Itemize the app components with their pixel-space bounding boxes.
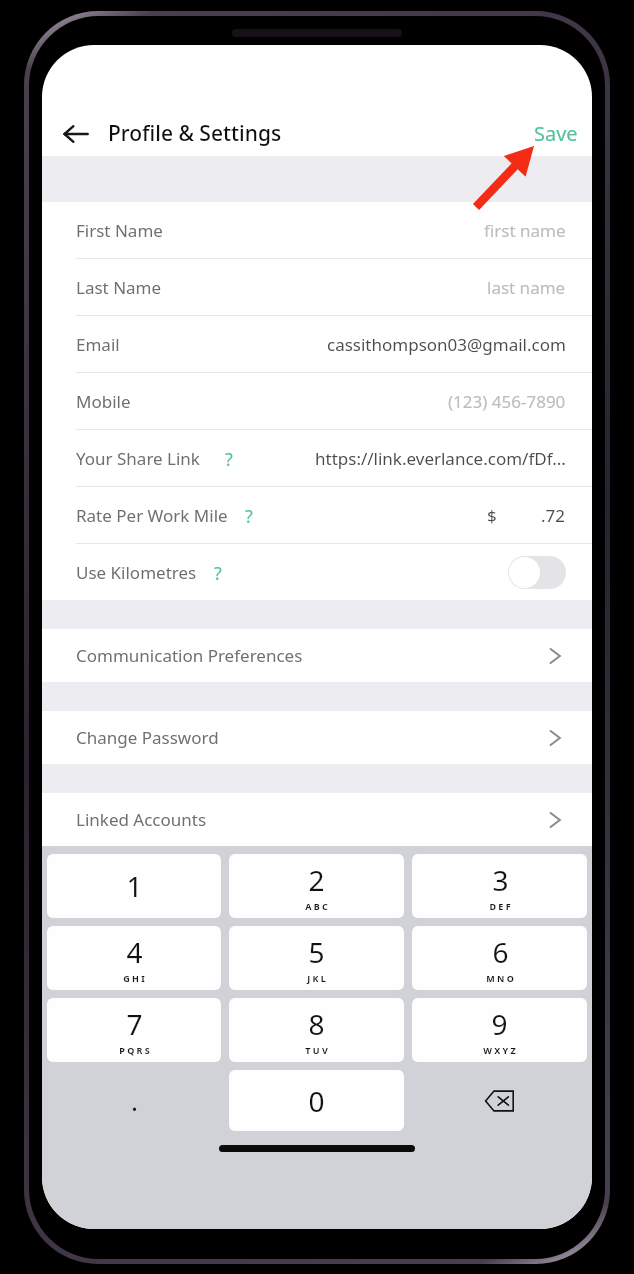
staticText: Rate Per Work Mile xyxy=(76,504,228,527)
button[interactable]: 8 xyxy=(229,998,404,1062)
button[interactable]: 5 xyxy=(229,926,404,990)
staticText: $ xyxy=(487,504,497,527)
button[interactable]: Back xyxy=(52,111,100,156)
button[interactable]: Communication Preferences xyxy=(42,629,592,682)
button[interactable]: decimal point xyxy=(47,1070,221,1131)
staticText: Save xyxy=(534,120,578,147)
staticText: Profile & Settings xyxy=(108,119,282,148)
staticText: A B C xyxy=(305,900,328,912)
staticText: (123) 456-7890 xyxy=(448,390,566,413)
staticText: P Q R S xyxy=(119,1044,150,1056)
button[interactable]: Save xyxy=(520,112,592,155)
button[interactable]: 9 xyxy=(412,998,587,1062)
button[interactable]: Help xyxy=(238,504,260,526)
staticText: 7 xyxy=(126,1005,143,1043)
staticText: ? xyxy=(225,447,233,469)
staticText: D E F xyxy=(489,900,511,912)
staticText: Your Share Link xyxy=(76,447,200,470)
staticText: 2 xyxy=(308,861,325,899)
staticText: Last Name xyxy=(76,276,162,299)
button[interactable]: Change Password xyxy=(42,711,592,764)
staticText: ? xyxy=(245,504,253,526)
button[interactable]: Help xyxy=(207,561,229,583)
staticText: Communication Preferences xyxy=(76,644,303,667)
button[interactable]: 0 xyxy=(229,1070,404,1131)
staticText: . xyxy=(131,1083,138,1118)
staticText: Linked Accounts xyxy=(76,808,207,831)
staticText: 5 xyxy=(308,933,325,971)
staticText: Change Password xyxy=(76,726,219,749)
button[interactable]: Use Kilometres toggle xyxy=(508,556,566,589)
button[interactable]: 2 xyxy=(229,854,404,918)
staticText: 6 xyxy=(492,933,509,971)
staticText: 0 xyxy=(308,1082,325,1120)
staticText: 3 xyxy=(492,861,509,899)
button[interactable]: Last Name xyxy=(42,259,592,315)
staticText: cassithompson03@gmail.com xyxy=(327,333,566,356)
staticText: G H I xyxy=(123,972,145,984)
staticText: M N O xyxy=(486,972,514,984)
button[interactable]: Linked Accounts xyxy=(42,793,592,846)
button[interactable]: Help xyxy=(218,447,240,469)
button[interactable]: 7 xyxy=(47,998,221,1062)
staticText: first name xyxy=(484,219,566,242)
staticText: 9 xyxy=(491,1005,508,1043)
button[interactable]: Backspace xyxy=(412,1070,587,1131)
button[interactable]: 1 xyxy=(47,854,221,918)
button[interactable]: Email xyxy=(42,316,592,372)
staticText: Use Kilometres xyxy=(76,561,197,584)
button[interactable]: First Name xyxy=(42,202,592,258)
staticText: ? xyxy=(214,561,222,583)
staticText: 8 xyxy=(308,1005,325,1043)
button[interactable]: Mobile xyxy=(42,373,592,429)
staticText: Email xyxy=(76,333,120,356)
staticText: last name xyxy=(487,276,566,299)
button[interactable]: 4 xyxy=(47,926,221,990)
staticText: First Name xyxy=(76,219,163,242)
staticText: https://link.everlance.com/fDf... xyxy=(315,447,566,470)
button[interactable]: Your Share Link xyxy=(42,430,592,486)
staticText: .72 xyxy=(541,504,566,527)
staticText: T U V xyxy=(305,1044,328,1056)
staticText: 4 xyxy=(126,933,143,971)
staticText: W X Y Z xyxy=(483,1044,516,1056)
button[interactable]: 3 xyxy=(412,854,587,918)
staticText: 1 xyxy=(126,867,143,905)
staticText: J K L xyxy=(307,972,326,984)
button[interactable]: Rate Per Work Mile xyxy=(42,487,592,543)
button[interactable]: 6 xyxy=(412,926,587,990)
staticText: Mobile xyxy=(76,390,131,413)
